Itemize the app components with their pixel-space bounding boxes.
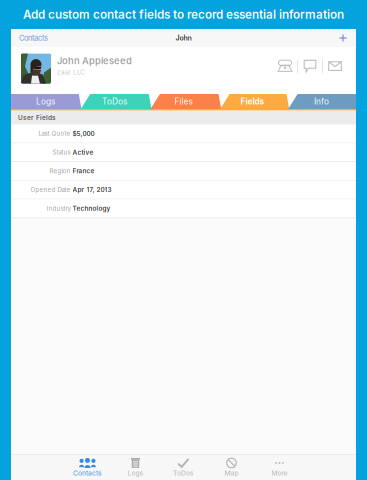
staticText: Industry <box>46 205 70 212</box>
button[interactable]: Last Quote <box>11 125 356 143</box>
button[interactable]: Contacts <box>63 455 111 480</box>
staticText: Technology <box>72 204 110 212</box>
button[interactable]: Message <box>298 58 322 74</box>
staticText: Contacts <box>19 33 48 42</box>
staticText: France <box>72 167 94 175</box>
staticText: ToDos <box>102 96 127 106</box>
button[interactable]: Info <box>287 94 356 109</box>
staticText: Last Quote <box>38 130 70 137</box>
staticText: Logs <box>127 469 143 477</box>
button[interactable]: Logs <box>11 94 80 109</box>
staticText: User Fields <box>18 114 56 121</box>
button[interactable]: ToDos <box>159 455 207 480</box>
button[interactable]: Status <box>11 143 356 162</box>
button[interactable]: Region <box>11 162 356 181</box>
button[interactable]: Opened Date <box>11 181 356 199</box>
staticText: Map <box>224 469 238 477</box>
staticText: Active <box>72 148 93 156</box>
button[interactable]: Fields <box>218 94 287 109</box>
staticText: Apr 17, 2013 <box>72 186 111 193</box>
staticText: More <box>271 469 287 477</box>
button[interactable]: Add contact <box>334 29 356 47</box>
button[interactable]: Map <box>207 455 255 480</box>
staticText: ToDos <box>173 469 194 477</box>
staticText: $5,000 <box>72 130 94 137</box>
staticText: Info <box>314 96 329 106</box>
staticText: Fields <box>240 96 264 106</box>
staticText: John Appleseed <box>57 55 132 66</box>
staticText: Contacts <box>73 469 102 477</box>
staticText: Add custom contact fields to record esse… <box>23 7 344 22</box>
staticText: Logs <box>36 96 55 106</box>
button[interactable]: Contacts <box>11 29 48 47</box>
button[interactable]: ToDos <box>80 94 149 109</box>
staticText: Status <box>52 149 70 156</box>
staticText: Opened Date <box>30 186 70 193</box>
staticText: Region <box>49 167 70 175</box>
button[interactable]: Files <box>149 94 218 109</box>
button[interactable]: More <box>255 455 303 480</box>
button[interactable]: Industry <box>11 199 356 218</box>
button[interactable]: Call <box>273 58 297 74</box>
staticText: Files <box>174 96 192 106</box>
staticText: zaal LLC <box>57 68 85 76</box>
button[interactable]: Email <box>323 58 347 74</box>
staticText: John <box>175 34 191 42</box>
button[interactable]: Logs <box>111 455 159 480</box>
